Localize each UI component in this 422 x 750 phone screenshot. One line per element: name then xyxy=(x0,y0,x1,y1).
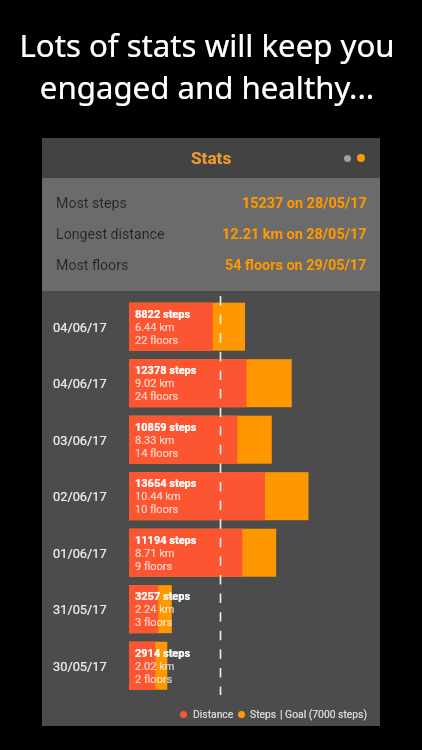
staticText: 31/05/17 xyxy=(53,602,107,617)
staticText: 9 floors xyxy=(135,560,173,573)
staticText: 03/06/17 xyxy=(53,433,107,448)
staticText: 10.44 km xyxy=(135,490,181,503)
staticText: Lots of stats will keep you engaged and … xyxy=(19,24,395,108)
button[interactable]: Most floors xyxy=(42,250,380,281)
button[interactable]: 02/06/17 xyxy=(42,472,380,520)
button[interactable]: 04/06/17 xyxy=(42,303,380,351)
staticText: 2914 steps xyxy=(135,647,191,660)
button[interactable]: Page indicator xyxy=(344,154,365,162)
staticText: 24 floors xyxy=(135,390,179,403)
staticText: 6.44 km xyxy=(135,321,175,334)
staticText: Steps xyxy=(250,708,277,720)
staticText: | Goal (7000 steps) xyxy=(280,708,368,720)
staticText: 13654 steps xyxy=(135,477,197,490)
staticText: Most floors xyxy=(56,257,129,274)
staticText: 2.24 km xyxy=(135,603,175,616)
staticText: 04/06/17 xyxy=(53,376,107,391)
staticText: 22 floors xyxy=(135,334,179,347)
button[interactable]: 03/06/17 xyxy=(42,416,380,464)
button[interactable]: 04/06/17 xyxy=(42,359,380,407)
button[interactable]: 31/05/17 xyxy=(42,585,380,633)
staticText: 10859 steps xyxy=(135,421,197,434)
staticText: Stats xyxy=(191,148,232,168)
staticText: Longest distance xyxy=(56,226,165,243)
staticText: 04/06/17 xyxy=(53,320,107,335)
staticText: 01/06/17 xyxy=(53,546,107,561)
button[interactable]: Most steps xyxy=(42,188,380,219)
button[interactable]: 01/06/17 xyxy=(42,529,380,577)
staticText: 02/06/17 xyxy=(53,489,107,504)
staticText: 3257 steps xyxy=(135,590,191,603)
button[interactable]: Longest distance xyxy=(42,219,380,250)
staticText: 54 floors on 29/05/17 xyxy=(225,257,367,274)
staticText: 30/05/17 xyxy=(53,659,107,674)
staticText: 8822 steps xyxy=(135,308,191,321)
staticText: 11194 steps xyxy=(135,534,197,547)
staticText: 15237 on 28/05/17 xyxy=(242,195,367,212)
staticText: 3 floors xyxy=(135,616,173,629)
staticText: Most steps xyxy=(56,195,127,212)
staticText: 8.33 km xyxy=(135,434,175,447)
staticText: 12378 steps xyxy=(135,364,197,377)
staticText: 9.02 km xyxy=(135,377,175,390)
staticText: 2.02 km xyxy=(135,660,175,673)
staticText: Distance xyxy=(193,708,234,720)
button[interactable]: Distance xyxy=(180,708,368,720)
staticText: 2 floors xyxy=(135,673,173,686)
staticText: 14 floors xyxy=(135,447,179,460)
staticText: 10 floors xyxy=(135,503,179,516)
staticText: 12.21 km on 28/05/17 xyxy=(222,226,367,243)
staticText: 8.71 km xyxy=(135,547,175,560)
button[interactable]: 30/05/17 xyxy=(42,642,380,690)
